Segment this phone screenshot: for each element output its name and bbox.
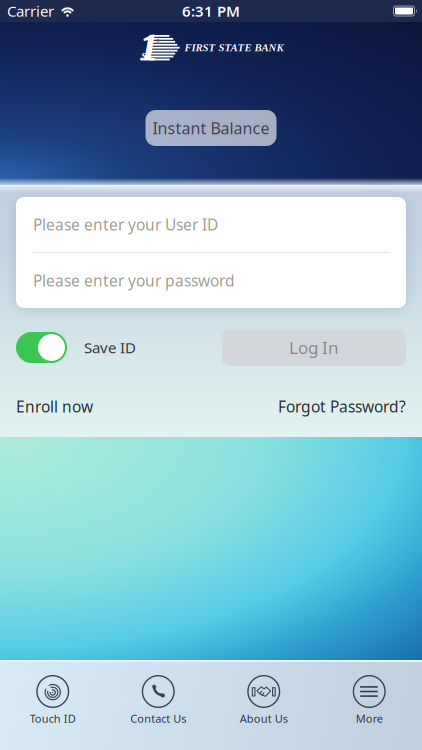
button[interactable]: About Us bbox=[211, 675, 316, 726]
staticText: Please enter your password bbox=[33, 270, 235, 291]
staticText: 6:31 PM bbox=[182, 1, 240, 21]
staticText: More bbox=[356, 711, 383, 726]
textField[interactable]: Please enter your User ID bbox=[33, 214, 389, 235]
staticText: About Us bbox=[240, 711, 288, 726]
staticText: 1 bbox=[139, 27, 158, 69]
button[interactable]: Log In bbox=[222, 329, 406, 366]
button[interactable]: Save ID bbox=[16, 332, 67, 363]
staticText: FIRST STATE BANK bbox=[184, 41, 283, 53]
staticText: 1 bbox=[139, 26, 158, 68]
staticText: Forgot Password? bbox=[278, 396, 406, 417]
staticText: Please enter your User ID bbox=[33, 214, 218, 235]
staticText: Log In bbox=[289, 336, 339, 359]
button[interactable]: Touch ID bbox=[0, 675, 105, 726]
button[interactable]: Contact Us bbox=[105, 675, 211, 726]
staticText: Instant Balance bbox=[152, 117, 269, 139]
staticText: Contact Us bbox=[130, 711, 186, 726]
staticText: Save ID bbox=[84, 337, 136, 358]
textField[interactable]: Please enter your password bbox=[33, 270, 389, 291]
button[interactable]: Instant Balance bbox=[145, 110, 276, 146]
button[interactable]: Enroll now bbox=[16, 396, 93, 417]
staticText: Touch ID bbox=[30, 711, 76, 726]
staticText: Enroll now bbox=[16, 396, 93, 417]
button[interactable]: More bbox=[316, 675, 422, 726]
staticText: 1 bbox=[140, 26, 159, 68]
staticText: Carrier bbox=[7, 1, 54, 21]
staticText: st bbox=[141, 47, 150, 62]
button[interactable]: Forgot Password? bbox=[278, 396, 406, 417]
